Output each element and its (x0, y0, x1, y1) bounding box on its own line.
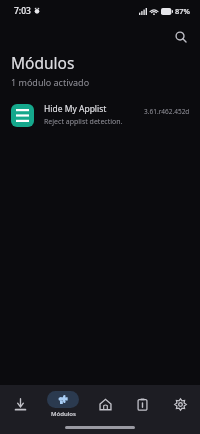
staticText: Módulos (51, 410, 76, 418)
staticText: Reject applist detection. (44, 117, 123, 127)
button[interactable]: Settings (163, 387, 197, 421)
staticText: 1 módulo activado (11, 76, 90, 88)
staticText: 87% (175, 6, 190, 16)
staticText: Módulos (11, 52, 75, 73)
staticText: 7:03 (14, 5, 31, 17)
staticText: 3.61.r462.452d (144, 107, 190, 116)
button[interactable]: Hide My Applist (0, 94, 200, 136)
button[interactable]: Módulos (41, 391, 85, 418)
button[interactable]: Logs (125, 387, 159, 421)
staticText: Hide My Applist (44, 103, 107, 115)
button[interactable]: Home (88, 387, 122, 421)
button[interactable]: Search (168, 24, 194, 50)
button[interactable]: Downloads (3, 387, 37, 421)
